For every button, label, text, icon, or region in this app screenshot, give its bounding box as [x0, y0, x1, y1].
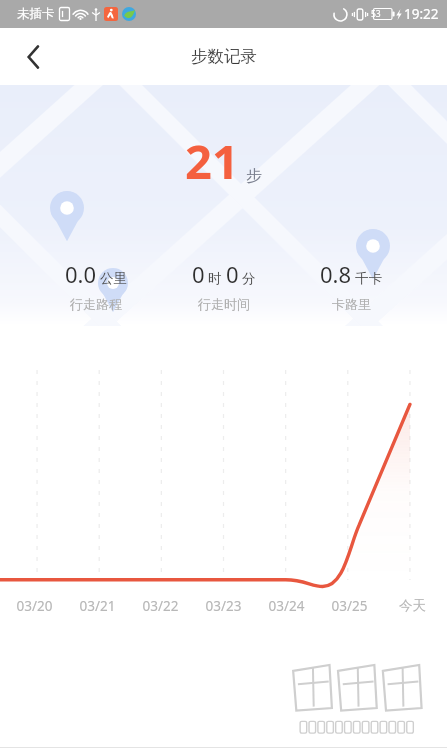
- staticText: 19:22: [404, 5, 439, 23]
- staticText: 0.8: [320, 259, 352, 289]
- staticText: 千卡: [355, 270, 382, 287]
- staticText: 未插卡: [17, 6, 55, 22]
- staticText: 行走时间: [198, 296, 250, 312]
- staticText: 03/21: [69, 597, 126, 615]
- staticText: 0: [192, 259, 205, 289]
- staticText: 0: [226, 259, 239, 289]
- staticText: 03/23: [195, 597, 252, 615]
- staticText: 今天: [384, 597, 441, 614]
- staticText: 03/20: [6, 597, 63, 615]
- staticText: 步: [246, 166, 262, 186]
- staticText: 0.0: [65, 259, 97, 289]
- staticText: 03/25: [321, 597, 378, 615]
- staticText: 03/22: [132, 597, 189, 615]
- staticText: 03/24: [258, 597, 315, 615]
- staticText: 步数记录: [191, 46, 257, 67]
- staticText: 分: [242, 270, 256, 287]
- button[interactable]: Back: [12, 36, 54, 78]
- staticText: 公里: [100, 270, 127, 287]
- staticText: 卡路里: [332, 296, 371, 312]
- staticText: 时: [208, 270, 222, 287]
- staticText: 21: [185, 129, 239, 193]
- staticText: 行走路程: [70, 296, 122, 312]
- staticText: 53: [371, 8, 381, 20]
